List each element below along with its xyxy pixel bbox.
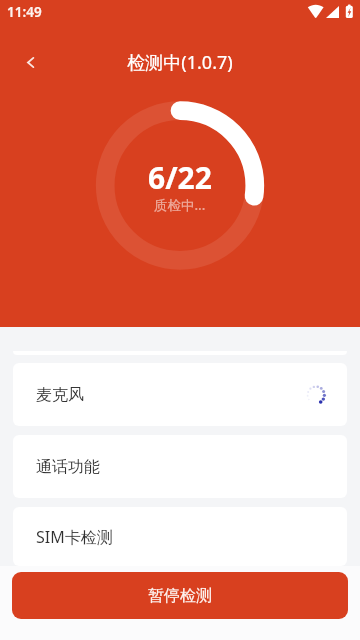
button[interactable]: Back — [14, 46, 46, 78]
staticText: 通话功能 — [36, 457, 100, 477]
button[interactable]: 暂停检测 — [12, 572, 348, 619]
button[interactable]: 通话功能 — [13, 435, 347, 498]
staticText: 6/22 — [148, 157, 212, 198]
staticText: 11:49 — [7, 3, 42, 21]
staticText: 检测中(1.0.7) — [127, 50, 233, 75]
staticText: 麦克风 — [36, 385, 84, 405]
staticText: 质检中... — [154, 196, 206, 214]
staticText: SIM卡检测 — [36, 526, 113, 548]
button[interactable]: SIM卡检测 — [13, 507, 347, 566]
button[interactable]: 麦克风 — [13, 363, 347, 426]
staticText: 暂停检测 — [148, 586, 212, 606]
